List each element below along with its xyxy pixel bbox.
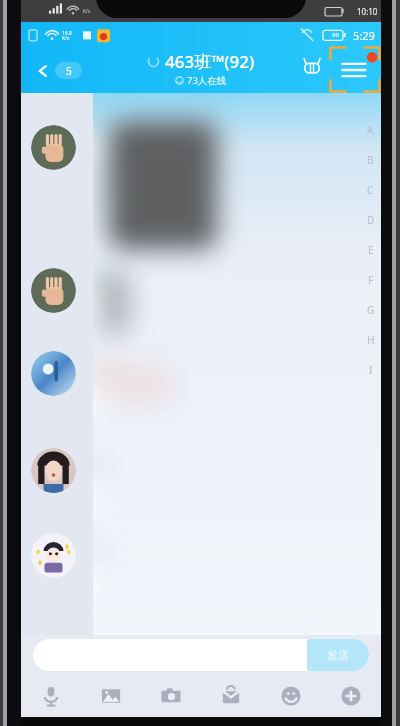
staticText: 发送 — [327, 648, 349, 662]
button[interactable]: Pet — [299, 53, 325, 79]
button[interactable]: Gift — [201, 675, 261, 717]
button[interactable]: User avatar — [31, 125, 76, 170]
staticText: I — [369, 363, 373, 377]
staticText: B — [367, 153, 374, 167]
button[interactable]: Photo — [81, 675, 141, 717]
staticText: E — [368, 243, 374, 257]
button[interactable]: C — [364, 175, 377, 205]
staticText: D — [367, 213, 375, 227]
button[interactable]: F — [364, 265, 377, 295]
staticText: 16.8 K/s — [62, 30, 72, 41]
button[interactable]: Camera — [141, 675, 201, 717]
button[interactable]: A — [364, 115, 377, 145]
button[interactable]: User avatar — [31, 448, 76, 493]
button[interactable]: User avatar — [31, 533, 76, 578]
staticText: 5:29 — [353, 28, 375, 43]
staticText: G — [367, 303, 375, 317]
button[interactable]: B — [364, 145, 377, 175]
staticText: 5 — [66, 64, 72, 78]
staticText: A — [367, 123, 374, 137]
button[interactable]: I — [364, 355, 377, 385]
button[interactable]: D — [364, 205, 377, 235]
button[interactable]: H — [364, 325, 377, 355]
button[interactable]: G — [364, 295, 377, 325]
button[interactable]: E — [364, 235, 377, 265]
button[interactable]: Voice — [21, 675, 81, 717]
staticText: 73人在线 — [187, 74, 227, 87]
staticText: 99 — [332, 31, 339, 39]
button[interactable]: User avatar — [31, 268, 76, 313]
staticText: 463班™(92) — [165, 50, 255, 73]
button[interactable]: Back, 5 unread — [33, 60, 84, 81]
button[interactable]: Emoji — [261, 675, 321, 717]
staticText: F — [368, 273, 374, 287]
staticText: 10:10 — [357, 6, 378, 17]
button[interactable]: More — [321, 675, 381, 717]
button[interactable]: User avatar — [31, 351, 76, 396]
staticText: C — [367, 183, 374, 197]
button[interactable] — [33, 639, 369, 671]
button[interactable]: 发送 — [307, 639, 369, 671]
staticText: K/s — [83, 8, 91, 15]
button[interactable]: Menu — [329, 46, 381, 93]
staticText: H — [367, 333, 375, 347]
